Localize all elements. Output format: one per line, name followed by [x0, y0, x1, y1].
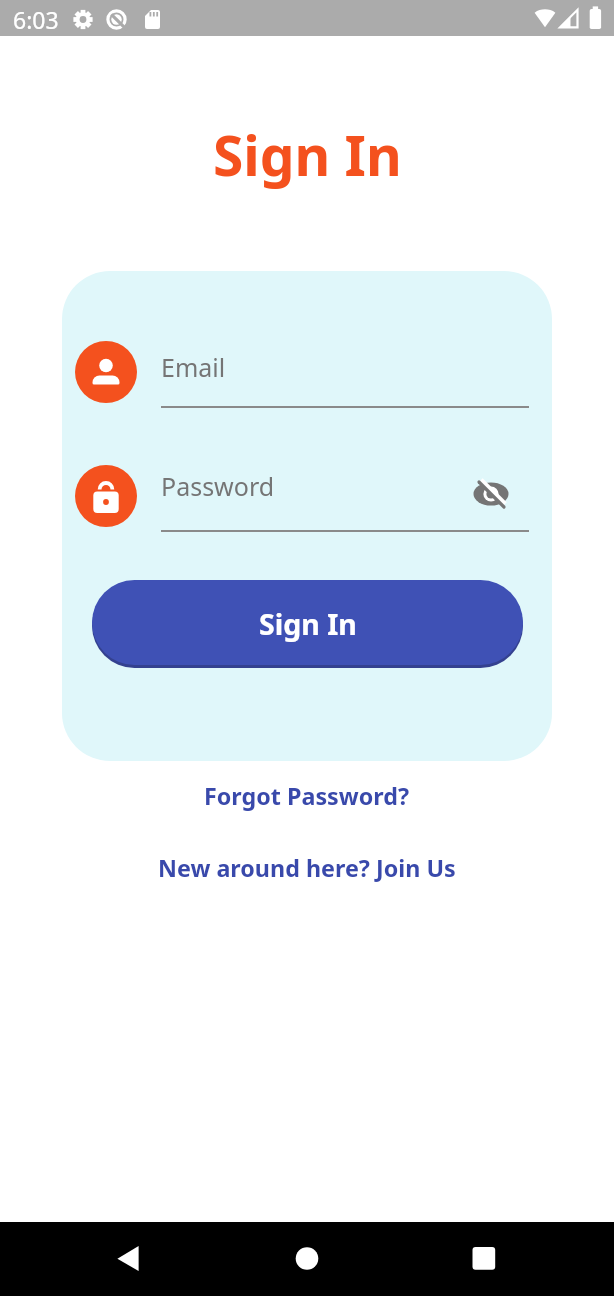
button[interactable] [102, 1231, 154, 1283]
staticText: Forgot Password? [204, 780, 410, 812]
button[interactable]: New around here? Join Us [158, 852, 456, 884]
staticText: 6:03 [13, 4, 59, 35]
button[interactable] [281, 1231, 333, 1283]
staticText: Sign In [259, 605, 357, 644]
staticText: Sign In [213, 117, 402, 192]
button[interactable]: Password [161, 460, 529, 532]
staticText: Password [161, 469, 275, 503]
button[interactable] [459, 1231, 511, 1283]
button[interactable]: Sign In [92, 580, 523, 665]
button[interactable]: Email [161, 336, 529, 408]
staticText: Email [161, 350, 226, 384]
staticText: New around here? Join Us [158, 852, 456, 884]
button[interactable] [473, 476, 509, 512]
button[interactable]: Forgot Password? [204, 780, 410, 812]
